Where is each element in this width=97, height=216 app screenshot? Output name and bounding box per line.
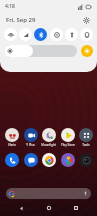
button[interactable]: Mobile data — [19, 28, 32, 41]
button[interactable] — [3, 153, 20, 167]
button[interactable]: Auto rotate — [80, 28, 93, 41]
button[interactable] — [59, 153, 76, 167]
button[interactable]: Auto brightness — [81, 45, 93, 57]
button[interactable]: Do not disturb — [50, 28, 63, 41]
button[interactable]: Tools — [77, 128, 94, 147]
staticText: Moonlight — [41, 143, 56, 147]
button[interactable]: Home — [43, 203, 55, 213]
staticText: Play Store — [61, 143, 75, 147]
button[interactable]: Back — [15, 203, 27, 213]
button[interactable]: Search — [6, 188, 91, 199]
button[interactable]: Y Plus — [22, 128, 39, 147]
staticText: Tools — [82, 143, 90, 147]
button[interactable]: Bluetooth — [34, 28, 47, 41]
button[interactable]: Shein — [3, 128, 20, 147]
staticText: 4:18 — [5, 3, 15, 10]
button[interactable]: Settings — [81, 15, 91, 25]
button[interactable]: Recents — [70, 203, 82, 213]
staticText: Shein — [8, 143, 16, 147]
button[interactable]: Play Store — [59, 128, 76, 147]
button[interactable] — [4, 45, 77, 57]
button[interactable]: Wi-Fi — [4, 28, 17, 41]
button[interactable]: Moonlight — [40, 128, 57, 147]
button[interactable] — [40, 153, 57, 167]
staticText: Y Plus — [26, 143, 35, 147]
button[interactable] — [77, 153, 94, 167]
button[interactable]: Flashlight — [65, 28, 78, 41]
staticText: Fri, Sep 29 — [6, 16, 36, 24]
button[interactable] — [22, 153, 39, 167]
